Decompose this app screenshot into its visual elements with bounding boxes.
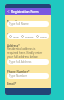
staticText: Type full Name <box>9 22 29 26</box>
staticText: Residential address is required here. Ki… <box>7 47 45 59</box>
staticText: Registration Form <box>11 10 39 14</box>
staticText: Address* <box>7 44 20 48</box>
staticText: Type Number <box>9 74 27 78</box>
button[interactable]: Female <box>21 35 34 38</box>
staticText: Phone Number* <box>7 70 30 74</box>
staticText: Email* <box>7 82 17 86</box>
staticText: Type full Address <box>9 60 32 64</box>
button[interactable]: Other <box>36 35 47 38</box>
button[interactable]: Type Number <box>7 73 49 79</box>
button[interactable]: Back <box>6 9 11 14</box>
button[interactable]: Type full Name <box>7 21 49 27</box>
staticText: Female <box>25 35 34 38</box>
staticText: Gender* <box>7 33 19 37</box>
staticText: Male <box>13 35 19 38</box>
button[interactable]: Male <box>9 35 19 38</box>
staticText: Name* <box>7 20 17 24</box>
staticText: Other <box>40 35 47 38</box>
button[interactable]: Type full Address <box>7 59 49 65</box>
